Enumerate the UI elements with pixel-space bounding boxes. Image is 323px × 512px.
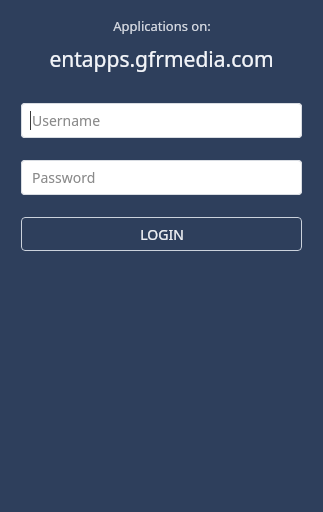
staticText: Applications on: <box>113 17 211 35</box>
staticText: Password <box>32 168 96 187</box>
staticText: Username <box>32 111 101 130</box>
staticText: LOGIN <box>140 225 184 244</box>
staticText: entapps.gfrmedia.com <box>49 45 274 74</box>
button[interactable]: Password <box>21 160 302 195</box>
button[interactable]: LOGIN <box>21 217 302 251</box>
button[interactable]: Username <box>21 103 302 138</box>
